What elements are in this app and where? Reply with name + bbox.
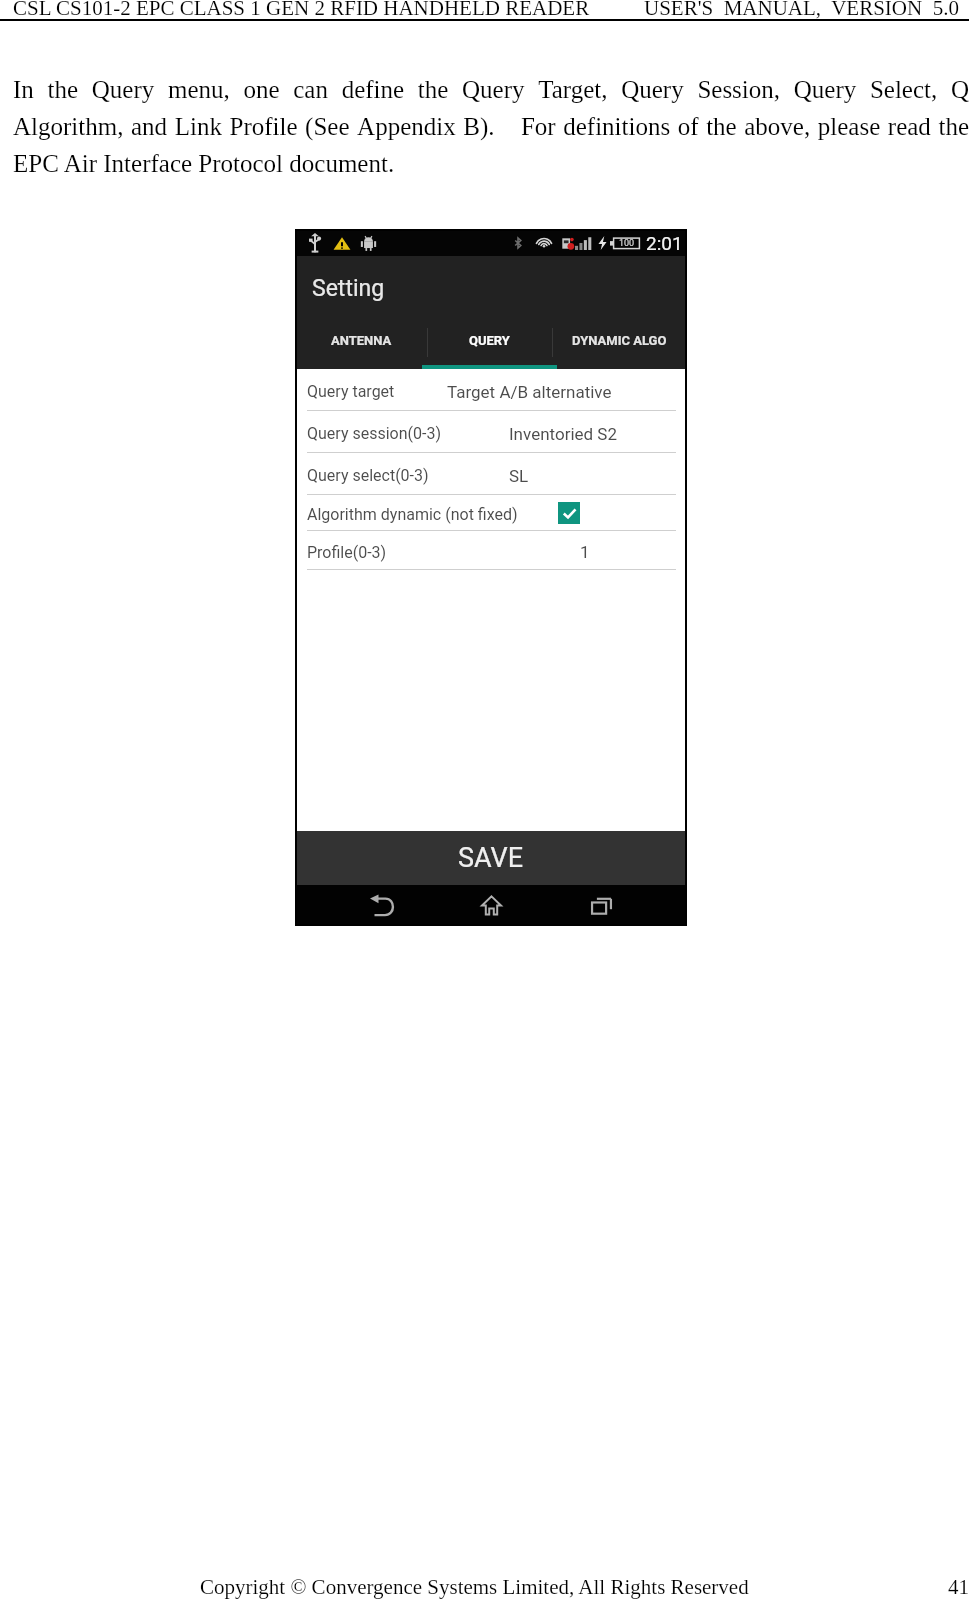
button[interactable]: Query session(0-3) [295, 411, 687, 453]
button[interactable]: Home [468, 885, 514, 926]
button[interactable]: Query target [295, 369, 687, 411]
button[interactable]: Profile(0-3) [295, 531, 687, 570]
staticText: 41 [948, 1575, 969, 1598]
button[interactable]: QUERY [427, 318, 552, 365]
button[interactable]: SAVE [295, 831, 687, 885]
staticText: Copyright © Convergence Systems Limited,… [200, 1575, 749, 1598]
button[interactable]: ANTENNA [295, 318, 427, 365]
staticText: 100 [619, 238, 635, 249]
staticText: CSL CS101-2 EPC CLASS 1 GEN 2 RFID HANDH… [13, 0, 590, 19]
button[interactable]: Algorithm dynamic (not fixed) [295, 495, 687, 531]
button[interactable]: Recent apps [578, 885, 624, 926]
staticText: SL [509, 466, 529, 486]
staticText: Query select(0-3) [307, 466, 429, 485]
staticText: Algorithm dynamic (not fixed) [307, 505, 518, 524]
button[interactable]: Query select(0-3) [295, 453, 687, 495]
button[interactable]: Back [359, 885, 405, 926]
staticText: QUERY [469, 333, 510, 348]
staticText: Profile(0-3) [307, 543, 387, 562]
staticText: Inventoried S2 [509, 424, 617, 444]
staticText: Target A/B alternative [447, 382, 612, 402]
staticText: 1 [580, 542, 590, 562]
staticText: Query target [307, 382, 395, 401]
button[interactable]: DYNAMIC ALGO [552, 318, 687, 365]
staticText: SAVE [458, 842, 524, 874]
staticText: 2:01 [646, 232, 683, 254]
staticText: USER'S MANUAL, VERSION 5.0 [644, 0, 959, 19]
staticText: ANTENNA [331, 333, 392, 348]
staticText: Setting [312, 275, 385, 302]
staticText: DYNAMIC ALGO [572, 333, 667, 348]
staticText: In the Query menu, one can define the Qu… [13, 76, 969, 178]
staticText: Query session(0-3) [307, 424, 441, 443]
